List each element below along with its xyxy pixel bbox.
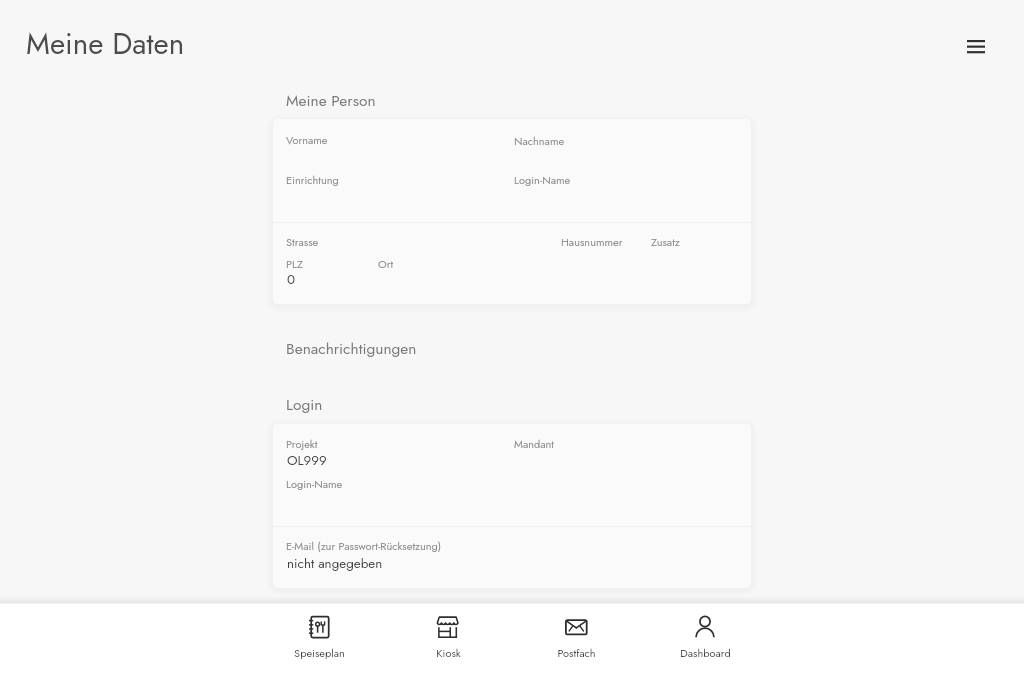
staticText: E-Mail (zur Passwort-Rücksetzung) [286, 538, 442, 554]
button[interactable]: Open navigation menu [953, 24, 998, 68]
button[interactable]: Kiosk [388, 608, 508, 670]
staticText: Projekt [286, 436, 318, 452]
button[interactable]: Speiseplan [259, 608, 379, 670]
staticText: Mandant [514, 436, 554, 452]
staticText: Strasse [286, 234, 319, 250]
staticText: nicht angegeben [287, 554, 383, 573]
staticText: Ort [378, 256, 394, 272]
button[interactable]: Dashboard [645, 608, 765, 670]
staticText: Kiosk [436, 645, 461, 661]
staticText: Meine Daten [26, 22, 185, 65]
staticText: Benachrichtigungen [286, 337, 417, 359]
staticText: Login-Name [514, 172, 571, 188]
staticText: Einrichtung [286, 172, 339, 188]
staticText: Hausnummer [561, 234, 623, 250]
staticText: PLZ [286, 256, 303, 272]
staticText: Postfach [557, 645, 596, 661]
staticText: Dashboard [680, 645, 731, 661]
staticText: OL999 [287, 451, 327, 470]
staticText: 0 [287, 270, 296, 289]
staticText: Speiseplan [294, 645, 345, 661]
staticText: Login-Name [286, 476, 343, 492]
staticText: Meine Person [286, 89, 376, 111]
button[interactable]: Postfach [516, 608, 636, 670]
staticText: Zusatz [651, 234, 680, 250]
staticText: Vorname [286, 132, 328, 148]
staticText: Login [286, 393, 323, 415]
staticText: Nachname [514, 133, 565, 149]
